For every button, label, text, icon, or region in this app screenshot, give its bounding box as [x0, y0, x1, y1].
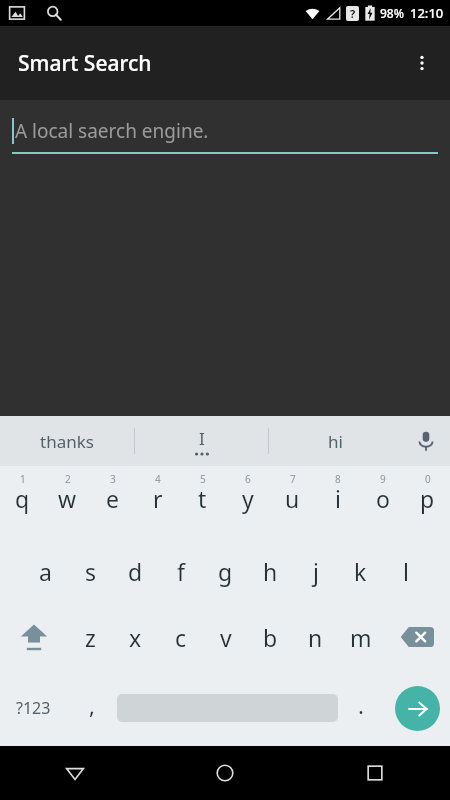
button[interactable]: a — [22, 538, 68, 604]
staticText: o — [376, 483, 390, 514]
staticText: j — [313, 556, 319, 587]
staticText: 6 — [245, 472, 251, 486]
staticText: 98% — [380, 5, 404, 21]
staticText: h — [263, 556, 278, 587]
button[interactable]: 8 — [315, 466, 360, 538]
button[interactable]: Voice input — [402, 416, 450, 466]
staticText: ?123 — [16, 697, 51, 719]
staticText: y — [242, 483, 254, 514]
button[interactable]: 4 — [135, 466, 180, 538]
button[interactable]: m — [338, 604, 383, 670]
button[interactable]: 3 — [90, 466, 135, 538]
staticText: f — [177, 556, 185, 587]
staticText: 2 — [65, 472, 71, 486]
staticText: 5 — [200, 472, 206, 486]
button[interactable]: More options — [400, 41, 444, 85]
button[interactable]: f — [158, 538, 203, 604]
staticText: u — [285, 483, 300, 514]
staticText: i — [335, 483, 341, 514]
staticText: t — [198, 483, 207, 514]
button[interactable]: , — [67, 670, 117, 746]
staticText: g — [218, 556, 233, 587]
staticText: a — [39, 556, 52, 587]
button[interactable]: v — [203, 604, 248, 670]
button[interactable]: 5 — [180, 466, 225, 538]
button[interactable] — [117, 670, 338, 746]
staticText: z — [85, 622, 96, 653]
button[interactable]: z — [67, 604, 113, 670]
button[interactable]: l — [383, 538, 428, 604]
staticText: k — [354, 556, 367, 587]
staticText: , — [89, 690, 95, 720]
button[interactable]: Home — [150, 746, 300, 800]
staticText: p — [420, 483, 435, 514]
staticText: Smart Search — [18, 49, 152, 78]
button[interactable]: Backspace — [383, 604, 450, 670]
button[interactable]: . — [338, 670, 384, 746]
staticText: A local saerch engine. — [15, 118, 209, 144]
button[interactable]: x — [113, 604, 158, 670]
button[interactable]: s — [68, 538, 113, 604]
button[interactable]: g — [203, 538, 248, 604]
staticText: 8 — [335, 472, 341, 486]
button[interactable]: d — [113, 538, 158, 604]
button[interactable]: hi — [269, 416, 402, 466]
staticText: 1 — [20, 472, 26, 486]
staticText: 4 — [155, 472, 161, 486]
staticText: m — [350, 622, 372, 653]
button[interactable]: h — [248, 538, 293, 604]
button[interactable]: I — [135, 416, 268, 466]
button[interactable]: 9 — [360, 466, 405, 538]
button[interactable]: Recent apps — [300, 746, 450, 800]
staticText: ? — [350, 6, 356, 21]
button[interactable]: c — [158, 604, 203, 670]
button[interactable]: b — [248, 604, 293, 670]
staticText: v — [220, 622, 232, 653]
staticText: l — [403, 556, 409, 587]
button[interactable]: Shift — [0, 604, 67, 670]
staticText: 9 — [380, 472, 386, 486]
button[interactable]: 7 — [270, 466, 315, 538]
button[interactable]: k — [338, 538, 383, 604]
staticText: thanks — [40, 430, 94, 453]
staticText: x — [129, 622, 142, 653]
staticText: c — [175, 622, 187, 653]
button[interactable]: 0 — [405, 466, 450, 538]
staticText: w — [58, 483, 77, 514]
staticText: s — [85, 556, 97, 587]
button[interactable]: Back — [0, 746, 150, 800]
staticText: r — [153, 483, 163, 514]
button[interactable]: 2 — [45, 466, 90, 538]
staticText: 0 — [425, 472, 431, 486]
button[interactable]: 1 — [0, 466, 45, 538]
button[interactable]: j — [293, 538, 338, 604]
staticText: 12:10 — [410, 4, 444, 22]
staticText: q — [15, 483, 30, 514]
staticText: I — [199, 427, 205, 450]
button[interactable]: 6 — [225, 466, 270, 538]
staticText: . — [358, 690, 364, 720]
staticText: 3 — [110, 472, 116, 486]
button[interactable]: thanks — [0, 416, 134, 466]
staticText: b — [263, 622, 278, 653]
button[interactable]: ?123 — [0, 670, 67, 746]
staticText: 7 — [290, 472, 296, 486]
staticText: e — [106, 483, 119, 514]
staticText: n — [308, 622, 323, 653]
button[interactable]: Search — [384, 670, 450, 746]
staticText: d — [128, 556, 143, 587]
button[interactable]: n — [293, 604, 338, 670]
staticText: hi — [328, 430, 343, 453]
